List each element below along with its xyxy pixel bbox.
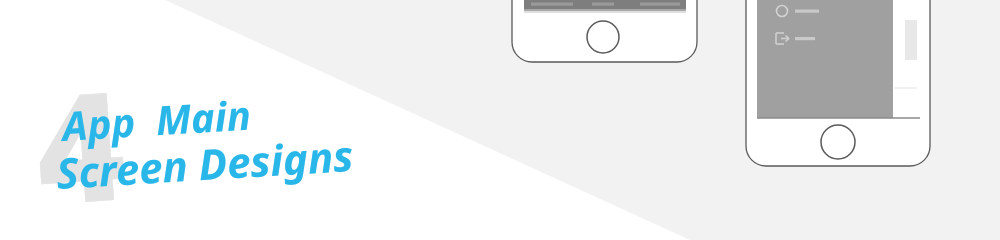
- button[interactable]: 4 App Main Screen Designs banner: [0, 0, 1000, 240]
